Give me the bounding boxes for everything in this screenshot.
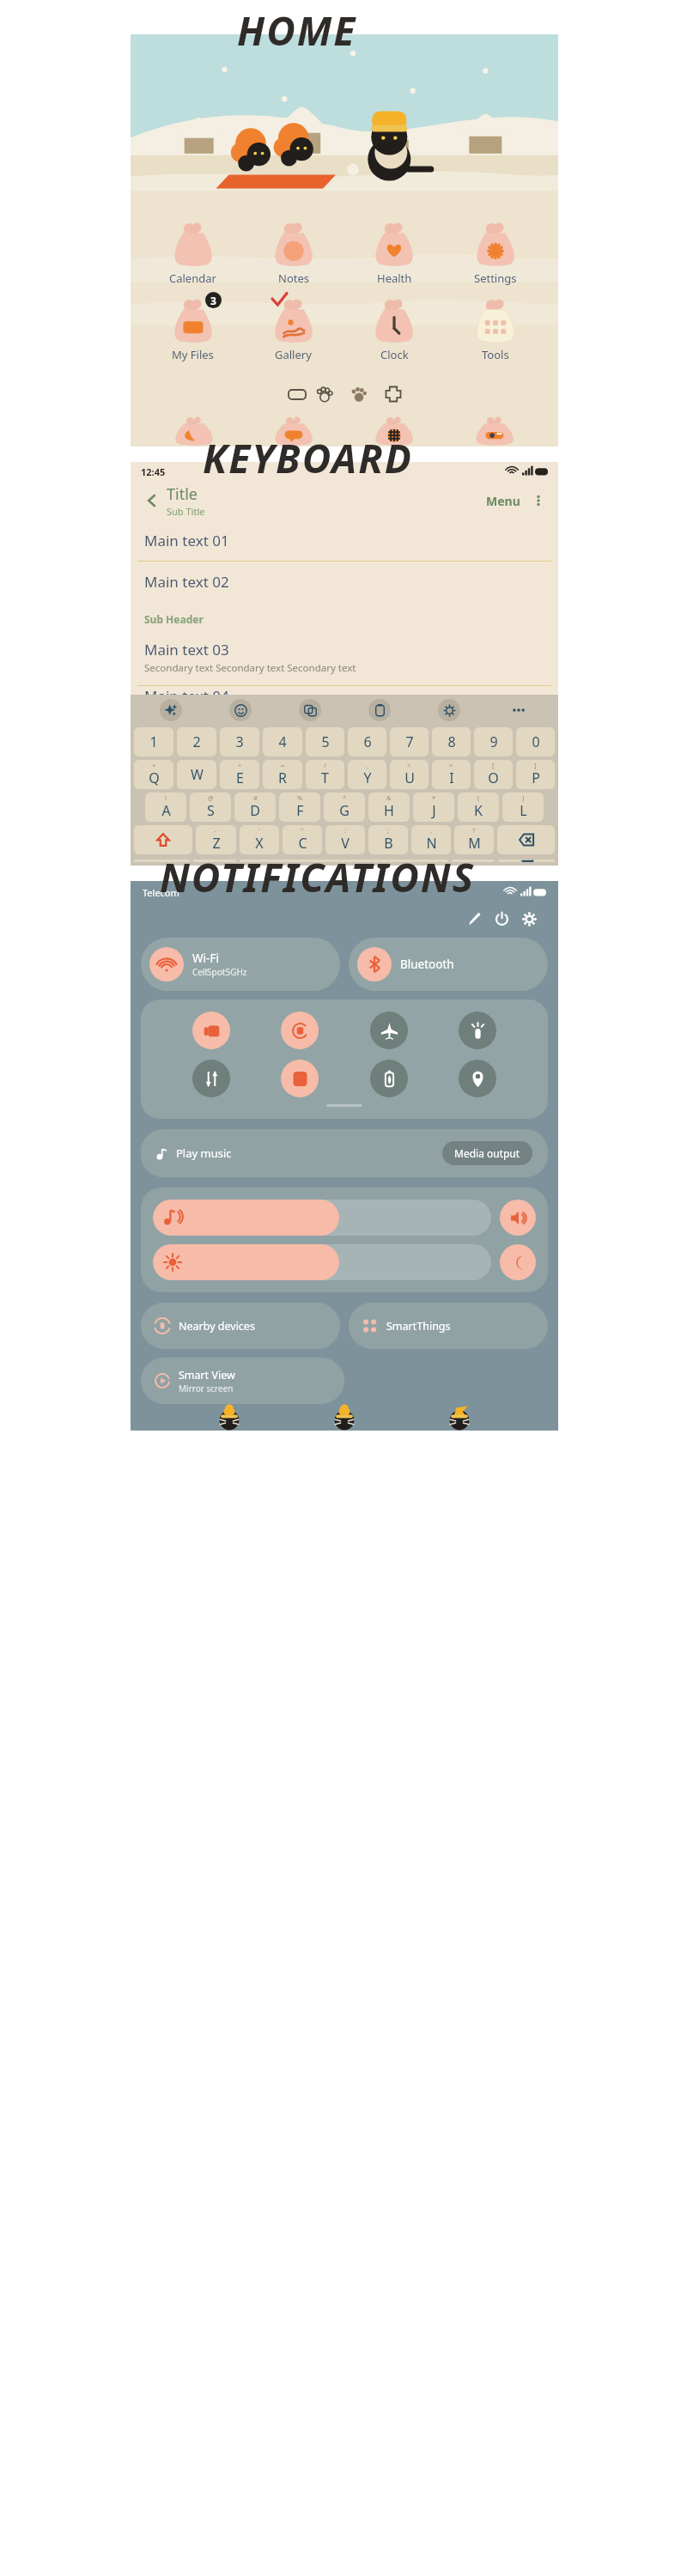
button[interactable]: Toggle 4 xyxy=(192,1060,230,1097)
button[interactable]: Toggle 2 xyxy=(370,1012,408,1049)
button[interactable]: Backspace xyxy=(497,825,555,854)
button[interactable]: ] xyxy=(516,760,555,789)
button[interactable]: * xyxy=(413,793,454,822)
button[interactable]: & xyxy=(368,793,410,822)
button[interactable]: Settings xyxy=(445,216,546,288)
button[interactable]: Title xyxy=(167,483,205,518)
button[interactable]: % xyxy=(279,793,320,822)
button[interactable]: ' xyxy=(240,825,279,854)
button[interactable]: Grid xyxy=(343,414,444,447)
button[interactable]: ) xyxy=(502,793,544,822)
button[interactable]: Phone xyxy=(144,414,244,447)
button[interactable]: : xyxy=(325,825,365,854)
staticText: B xyxy=(384,834,393,853)
button[interactable]: ( xyxy=(458,793,499,822)
button[interactable]: 6 xyxy=(348,727,386,756)
button[interactable]: 4 xyxy=(263,727,302,756)
button[interactable]: Toggle 0 xyxy=(192,1012,230,1049)
button[interactable]: Notes xyxy=(243,216,343,288)
button[interactable]: Settings xyxy=(515,905,543,933)
button[interactable]: Play music xyxy=(141,1129,548,1177)
button[interactable]: Msg xyxy=(244,414,343,447)
button[interactable]: [ xyxy=(474,760,513,789)
button[interactable]: Edit xyxy=(460,905,488,933)
button[interactable]: Main text 03 xyxy=(131,629,558,685)
button[interactable]: + xyxy=(134,760,173,789)
button[interactable]: 3 xyxy=(143,293,243,364)
button[interactable]: ? xyxy=(454,825,494,854)
button[interactable]: ! xyxy=(145,793,186,822)
button[interactable]: clipboard xyxy=(344,699,414,721)
button[interactable]: Night mode xyxy=(500,1244,536,1280)
button[interactable]: = xyxy=(263,760,302,789)
button[interactable]: < xyxy=(390,760,429,789)
button[interactable]: @ xyxy=(190,793,231,822)
button[interactable]: Toggle 6 xyxy=(370,1060,408,1097)
button[interactable]: 3 xyxy=(220,727,259,756)
staticText: ) xyxy=(522,793,525,802)
button[interactable]: Clock xyxy=(343,293,445,364)
button[interactable]: 5 xyxy=(306,727,344,756)
button[interactable]: Volume xyxy=(153,1200,491,1236)
button[interactable]: Main text 02 xyxy=(131,562,558,602)
button[interactable]: Brightness xyxy=(153,1244,491,1280)
button[interactable]: Menu xyxy=(481,489,526,513)
button[interactable]: - xyxy=(196,825,236,854)
staticText: V xyxy=(341,834,350,853)
button[interactable]: , xyxy=(411,825,451,854)
button[interactable]: _ xyxy=(348,760,386,789)
button[interactable]: ; xyxy=(368,825,408,854)
button[interactable]: 1 xyxy=(134,727,173,756)
button[interactable]: SmartThings xyxy=(349,1303,548,1349)
button[interactable]: > xyxy=(432,760,471,789)
button[interactable]: Toggle 3 xyxy=(459,1012,496,1049)
button[interactable]: Sound xyxy=(500,1200,536,1236)
button[interactable]: Back xyxy=(137,486,167,515)
button[interactable]: Tools xyxy=(445,293,546,364)
button[interactable]: 8 xyxy=(432,727,471,756)
button[interactable]: / xyxy=(306,760,344,789)
button[interactable]: Main text 01 xyxy=(131,520,558,561)
button[interactable]: , xyxy=(193,860,236,862)
button[interactable]: 2 xyxy=(177,727,216,756)
button[interactable]: Smart View xyxy=(141,1358,344,1404)
button[interactable]: Media output xyxy=(442,1141,532,1165)
button[interactable]: settings xyxy=(414,699,483,721)
staticText: [ xyxy=(492,761,495,769)
button[interactable]: Nearby devices xyxy=(141,1303,340,1349)
button[interactable]: Toggle 1 xyxy=(281,1012,319,1049)
button[interactable]: 0 xyxy=(516,727,555,756)
button[interactable]: More options xyxy=(526,488,551,513)
button[interactable]: More xyxy=(483,703,553,717)
button[interactable]: Toggle 7 xyxy=(459,1060,496,1097)
button[interactable]: ^ xyxy=(324,793,365,822)
button[interactable]: Toggle 5 xyxy=(281,1060,319,1097)
button[interactable]: Cam xyxy=(444,414,544,447)
button[interactable]: ÷ xyxy=(220,760,259,789)
button[interactable]: Power xyxy=(488,905,515,933)
staticText: / xyxy=(324,761,326,769)
button[interactable]: # xyxy=(234,793,276,822)
button[interactable]: emoji xyxy=(205,699,275,721)
button[interactable]: Enter xyxy=(498,860,555,862)
button[interactable]: sparkle xyxy=(136,699,205,721)
button[interactable]: Bluetooth xyxy=(349,938,548,991)
button[interactable]: Gallery xyxy=(243,293,343,364)
button[interactable]: 9 xyxy=(474,727,513,756)
button[interactable]: 7 xyxy=(390,727,429,756)
button[interactable]: Main text 04 xyxy=(131,686,558,695)
button[interactable]: W xyxy=(177,760,216,789)
button[interactable]: translate xyxy=(275,699,344,721)
button[interactable]: Health xyxy=(343,216,445,288)
button[interactable]: Wi-Fi xyxy=(141,938,340,991)
button[interactable]: Shift xyxy=(134,825,192,854)
button[interactable]: " xyxy=(283,825,322,854)
button[interactable]: Calendar xyxy=(143,216,243,288)
staticText: KEYBOARD xyxy=(203,431,413,485)
